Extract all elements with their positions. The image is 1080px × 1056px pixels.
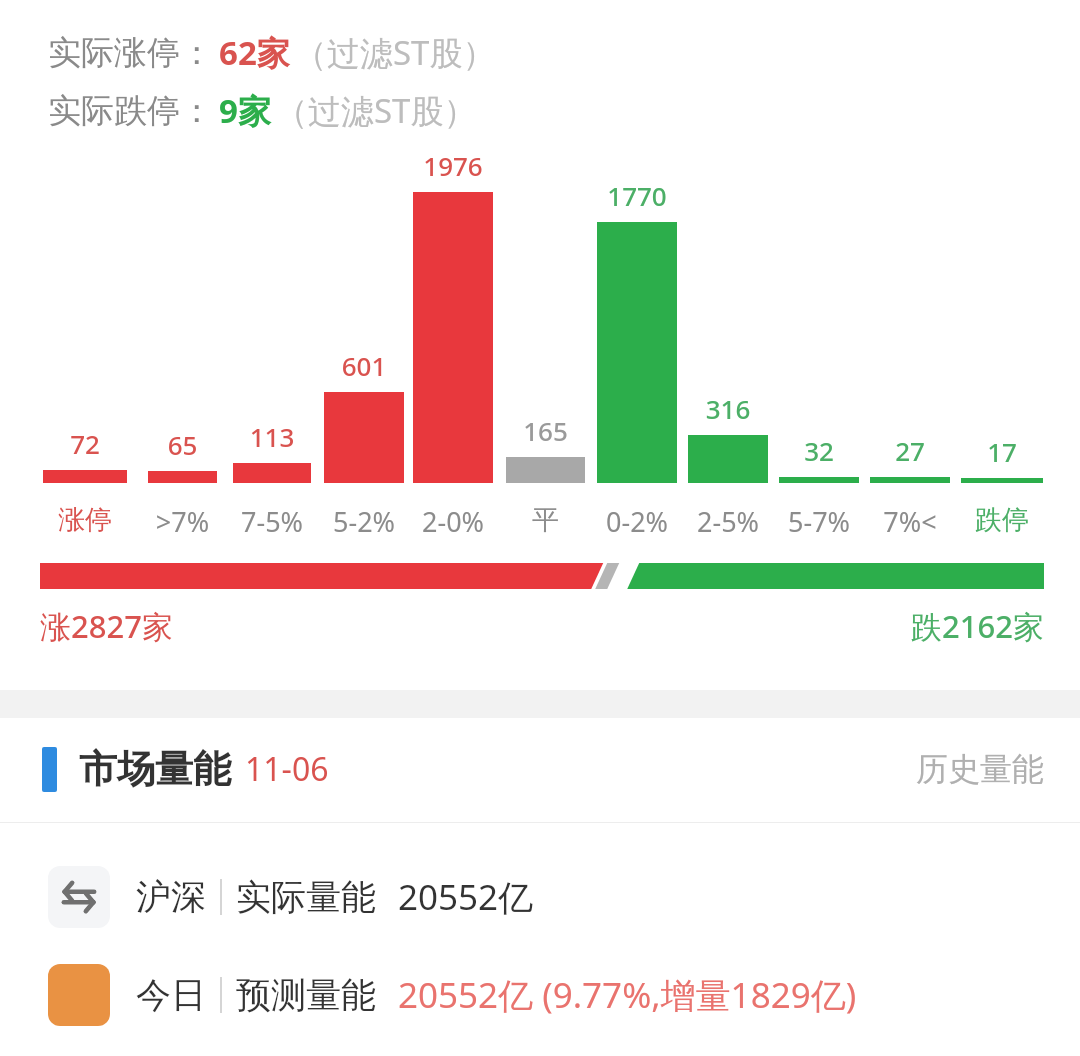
staticText: 316 bbox=[688, 391, 768, 426]
staticText: （过滤ST股） bbox=[275, 88, 477, 133]
staticText: 62家 bbox=[219, 30, 290, 75]
staticText: 1976 bbox=[413, 148, 493, 183]
staticText: 跌2162家 bbox=[0, 605, 1044, 647]
button[interactable]: 实际跌停： bbox=[48, 88, 477, 133]
other: 今日 bbox=[48, 964, 110, 1026]
staticText: 实际跌停： bbox=[48, 90, 213, 132]
staticText: 市场量能 bbox=[79, 745, 231, 793]
staticText: 165 bbox=[506, 413, 585, 448]
staticText: 预测量能 bbox=[236, 973, 376, 1017]
staticText: 沪深 bbox=[136, 875, 206, 919]
staticText: >7% bbox=[136, 503, 229, 540]
staticText: 9家 bbox=[219, 88, 271, 133]
button[interactable]: 交易所切换 bbox=[0, 852, 1080, 942]
staticText: 7-5% bbox=[221, 503, 323, 540]
staticText: 1770 bbox=[597, 178, 677, 213]
staticText: 20552亿 bbox=[398, 873, 534, 921]
staticText: 65 bbox=[148, 427, 217, 462]
staticText: 2-5% bbox=[676, 503, 780, 540]
staticText: （过滤ST股） bbox=[294, 30, 496, 75]
staticText: 5-7% bbox=[767, 503, 871, 540]
staticText: 17 bbox=[961, 434, 1043, 469]
staticText: 0-2% bbox=[585, 503, 689, 540]
staticText: 实际涨停： bbox=[48, 32, 213, 74]
staticText: 11-06 bbox=[245, 747, 329, 791]
staticText: 32 bbox=[779, 433, 859, 468]
staticText: 跌停 bbox=[949, 503, 1055, 537]
staticText: 113 bbox=[233, 419, 311, 454]
staticText: 72 bbox=[43, 426, 127, 461]
staticText: 实际量能 bbox=[236, 875, 376, 919]
button[interactable]: 市场量能 bbox=[0, 735, 1080, 803]
button[interactable] bbox=[40, 563, 1044, 589]
staticText: 历史量能 bbox=[916, 749, 1044, 789]
staticText: 涨停 bbox=[31, 503, 139, 537]
staticText: 5-2% bbox=[312, 503, 416, 540]
staticText: 7%< bbox=[858, 503, 962, 540]
button[interactable]: 今日 bbox=[0, 950, 1080, 1040]
staticText: 27 bbox=[870, 433, 950, 468]
staticText: 601 bbox=[324, 348, 404, 383]
staticText: 今日 bbox=[136, 973, 206, 1017]
button[interactable]: 实际涨停： bbox=[48, 30, 496, 75]
staticText: 20552亿 (9.77%,增量1829亿) bbox=[398, 971, 857, 1019]
staticText: 涨2827家 bbox=[40, 605, 173, 647]
staticText: 平 bbox=[494, 503, 597, 537]
other: 交易所切换 bbox=[48, 866, 110, 928]
staticText: 2-0% bbox=[401, 503, 505, 540]
